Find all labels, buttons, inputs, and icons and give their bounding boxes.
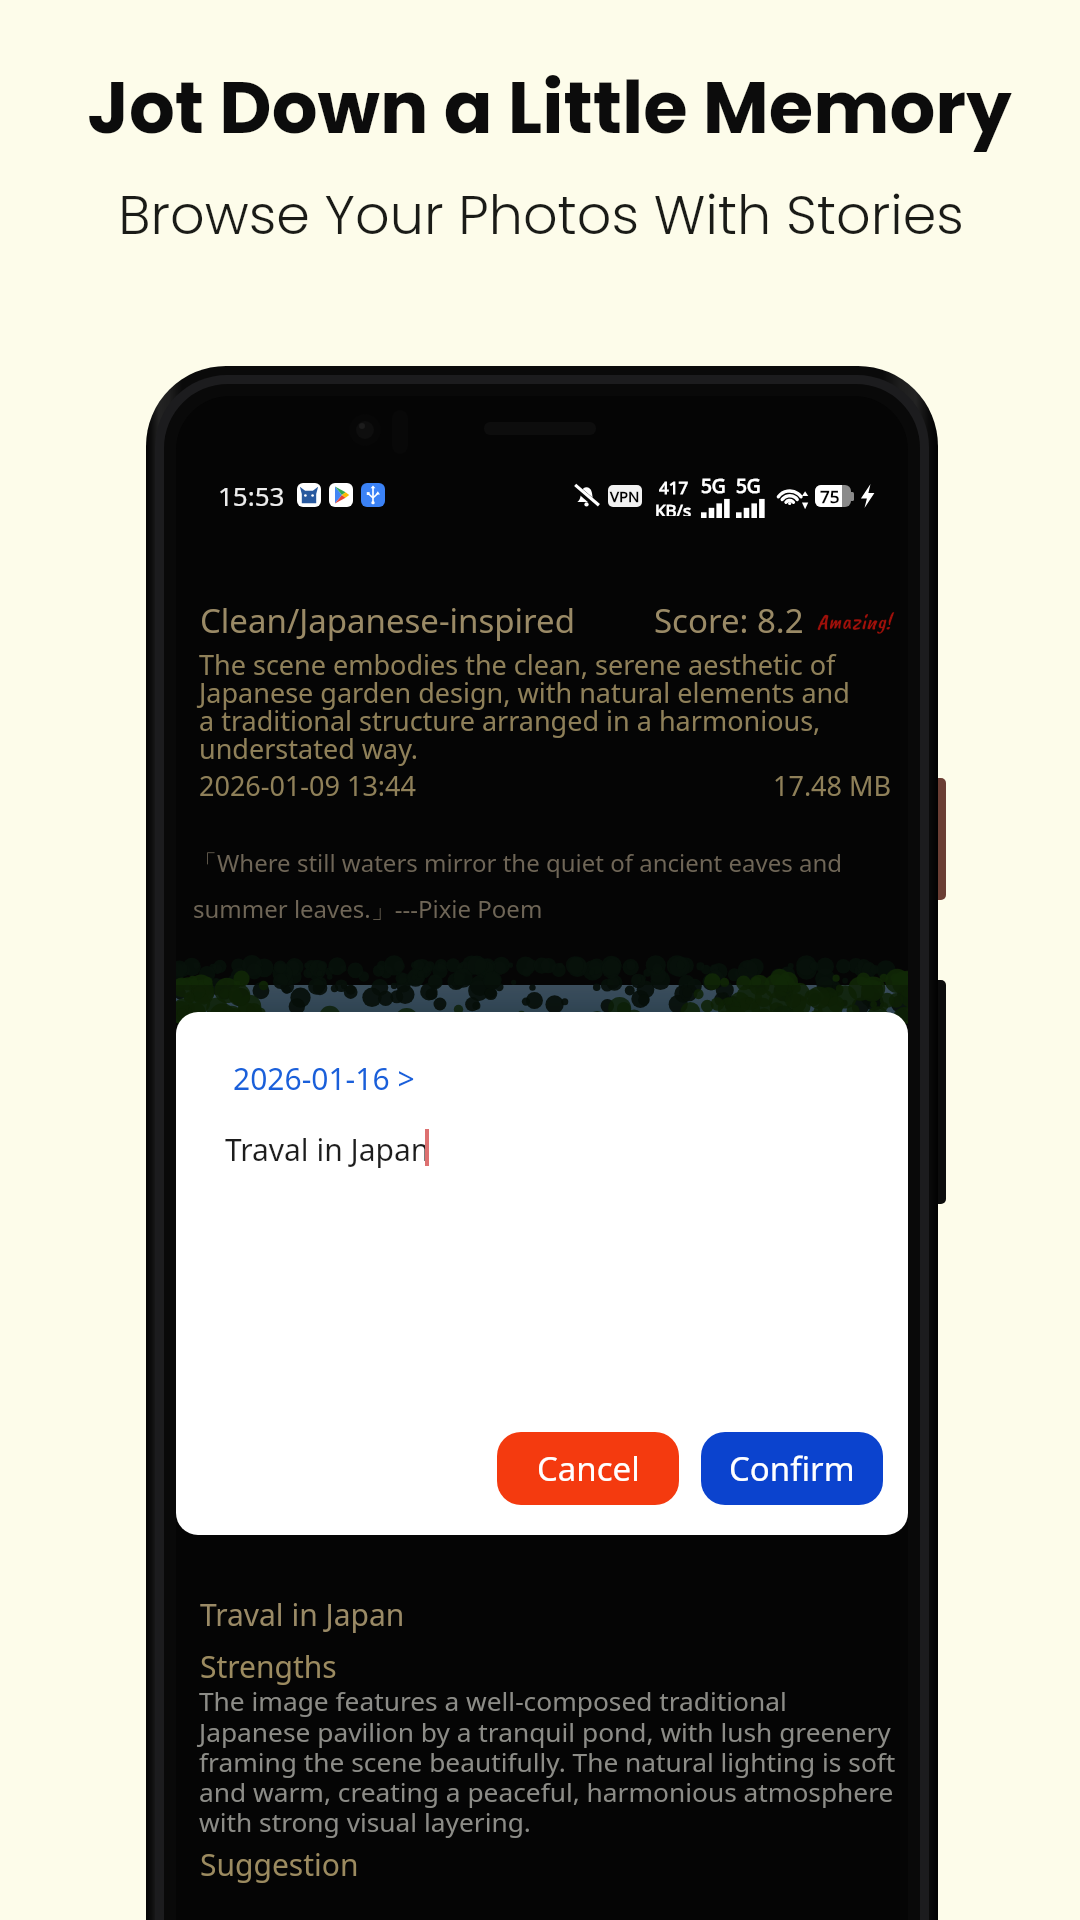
staticText: Browse Your Photos With Stories	[118, 177, 964, 253]
staticText: Suggestion	[200, 1844, 359, 1885]
staticText: Confirm	[729, 1446, 855, 1491]
button[interactable]: Open photo	[176, 985, 908, 1021]
staticText: Amazing!	[817, 607, 891, 636]
staticText: Traval in Japan	[225, 1129, 430, 1170]
staticText: 2026-01-16 >	[233, 1058, 415, 1099]
staticText: Strengths	[200, 1646, 337, 1687]
button[interactable]: Cancel	[497, 1432, 679, 1505]
button[interactable]: Traval in Japan	[176, 1594, 908, 1894]
staticText: Jot Down a Little Memory	[87, 57, 1012, 158]
button[interactable]: Clean/Japanese-inspired	[176, 598, 908, 928]
staticText: 15:53	[218, 478, 285, 513]
staticText: 5G	[736, 473, 761, 499]
staticText: The scene embodies the clean, serene aes…	[199, 646, 850, 767]
staticText: Traval in Japan	[200, 1594, 405, 1635]
staticText: KB/s	[655, 499, 692, 516]
staticText: Cancel	[537, 1446, 640, 1491]
staticText: VPN	[610, 486, 640, 506]
button[interactable]: Confirm	[701, 1432, 883, 1505]
staticText: 2026-01-09 13:44	[199, 767, 416, 804]
staticText: 75	[820, 485, 840, 507]
staticText: Clean/Japanese-inspired	[200, 598, 575, 643]
staticText: Score: 8.2	[654, 598, 804, 643]
staticText: 17.48 MB	[773, 767, 892, 804]
button[interactable]: Google Play notification	[329, 483, 353, 507]
staticText: 5G	[701, 473, 726, 499]
button[interactable]: 2026-01-16 >	[231, 1056, 417, 1101]
staticText: The image features a well-composed tradi…	[199, 1683, 896, 1839]
button[interactable]: USB connected	[361, 483, 385, 507]
staticText: 417	[659, 476, 689, 499]
staticText: 「Where still waters mirror the quiet of …	[193, 846, 908, 925]
button[interactable]: Notification from chat app	[297, 483, 321, 507]
